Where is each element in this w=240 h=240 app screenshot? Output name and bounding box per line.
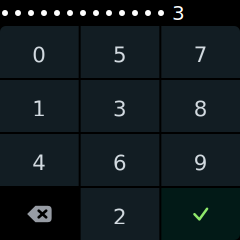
button[interactable]: 0 bbox=[0, 26, 79, 78]
staticText: 3 bbox=[172, 1, 185, 25]
button[interactable]: 6 bbox=[81, 134, 159, 186]
button[interactable]: 4 bbox=[0, 134, 79, 186]
button[interactable]: 5 bbox=[81, 26, 159, 78]
button[interactable]: 3 bbox=[81, 80, 159, 132]
staticText: 9 bbox=[194, 151, 208, 175]
staticText: 3 bbox=[113, 97, 127, 121]
button[interactable]: 1 bbox=[0, 80, 79, 132]
button[interactable]: 7 bbox=[161, 26, 240, 78]
button[interactable]: Confirm bbox=[161, 188, 240, 240]
staticText: 2 bbox=[113, 205, 127, 229]
staticText: 1 bbox=[32, 97, 46, 121]
button[interactable]: 9 bbox=[161, 134, 240, 186]
staticText: 4 bbox=[32, 151, 46, 175]
staticText: 5 bbox=[113, 43, 127, 67]
button[interactable]: 2 bbox=[81, 188, 159, 240]
staticText: 0 bbox=[32, 43, 46, 67]
staticText: 6 bbox=[113, 151, 127, 175]
button[interactable]: Delete bbox=[0, 188, 79, 240]
staticText: 8 bbox=[194, 97, 208, 121]
button[interactable]: 8 bbox=[161, 80, 240, 132]
staticText: 7 bbox=[194, 43, 208, 67]
